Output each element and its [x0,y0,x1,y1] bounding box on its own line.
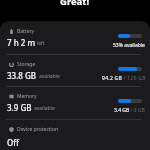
staticText: available [34,105,55,112]
staticText: Off [7,137,19,148]
staticText: 94.2 GB / 128 GB [102,75,146,82]
staticText: 53% available [113,42,145,49]
button[interactable]: Memory [0,87,150,119]
staticText: Memory [17,93,37,100]
staticText: left [37,40,45,47]
staticText: Great! [60,0,90,5]
button[interactable]: Battery [0,22,150,54]
staticText: 33.8 GB [7,70,37,81]
staticText: Battery [17,28,35,35]
button[interactable]: Storage [0,55,150,87]
staticText: 7 h 2 m [7,37,35,48]
button[interactable]: Device protection [0,120,150,150]
staticText: 3.9 GB [7,102,32,113]
staticText: 3.4 GB / 8 GB [114,107,145,114]
staticText: available [39,73,60,80]
staticText: Storage [17,61,36,68]
staticText: Device protection [17,126,59,133]
